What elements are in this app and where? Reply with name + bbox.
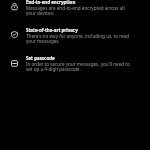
- button[interactable]: Privacy: [0, 27, 150, 49]
- staticText: Messages are end-to-end encrypted across…: [26, 5, 130, 17]
- staticText: Set passcode: [26, 55, 55, 61]
- staticText: State-of-the-art privacy: [26, 27, 78, 33]
- staticText: In order to secure your messages, you'll…: [26, 61, 130, 73]
- other: Encryption: [11, 3, 18, 10]
- other: Privacy: [11, 31, 18, 38]
- button[interactable]: Set passcode: [0, 55, 150, 77]
- button[interactable]: Encryption: [0, 0, 150, 21]
- staticText: There's no way for anyone, including us,…: [26, 33, 130, 45]
- other: Set passcode: [11, 60, 18, 67]
- staticText: End-to-end encryption: [26, 0, 76, 5]
